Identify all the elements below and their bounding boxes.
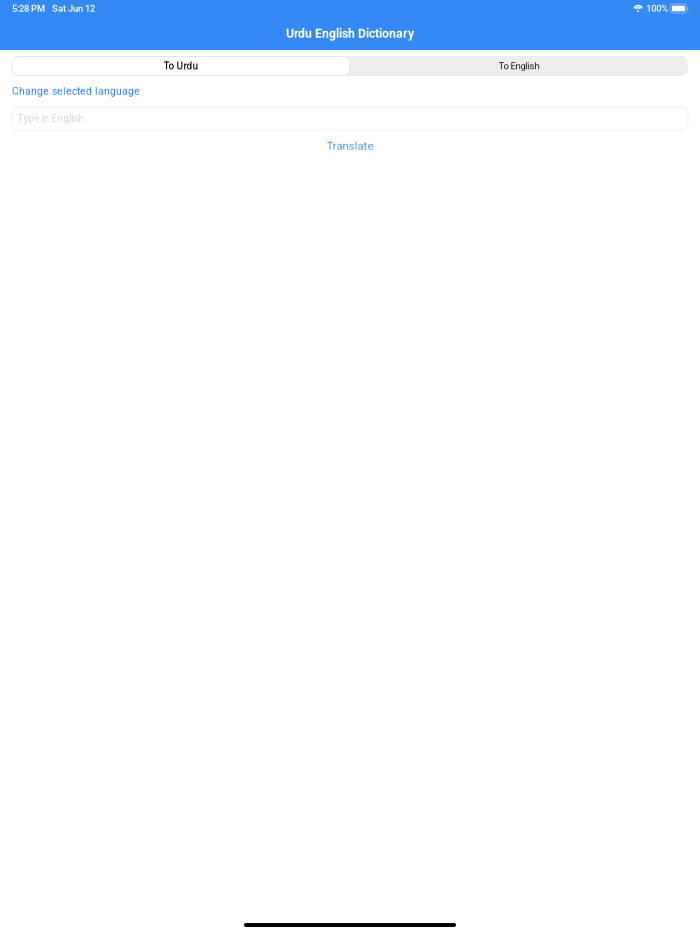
staticText: 5:28 PM — [12, 3, 45, 14]
button[interactable]: To English — [350, 56, 688, 76]
staticText: 100% — [646, 3, 668, 14]
staticText: Change selected language — [12, 85, 140, 97]
staticText: To Urdu — [163, 60, 198, 72]
staticText: To English — [498, 60, 539, 72]
staticText: Urdu English Dictionary — [286, 26, 414, 41]
button[interactable]: Change selected language — [12, 76, 146, 103]
staticText: Type in English — [17, 113, 84, 124]
button[interactable]: Translate — [12, 130, 688, 158]
staticText: Translate — [326, 139, 373, 153]
staticText: Sat Jun 12 — [52, 3, 95, 14]
button[interactable]: To Urdu — [12, 56, 350, 76]
